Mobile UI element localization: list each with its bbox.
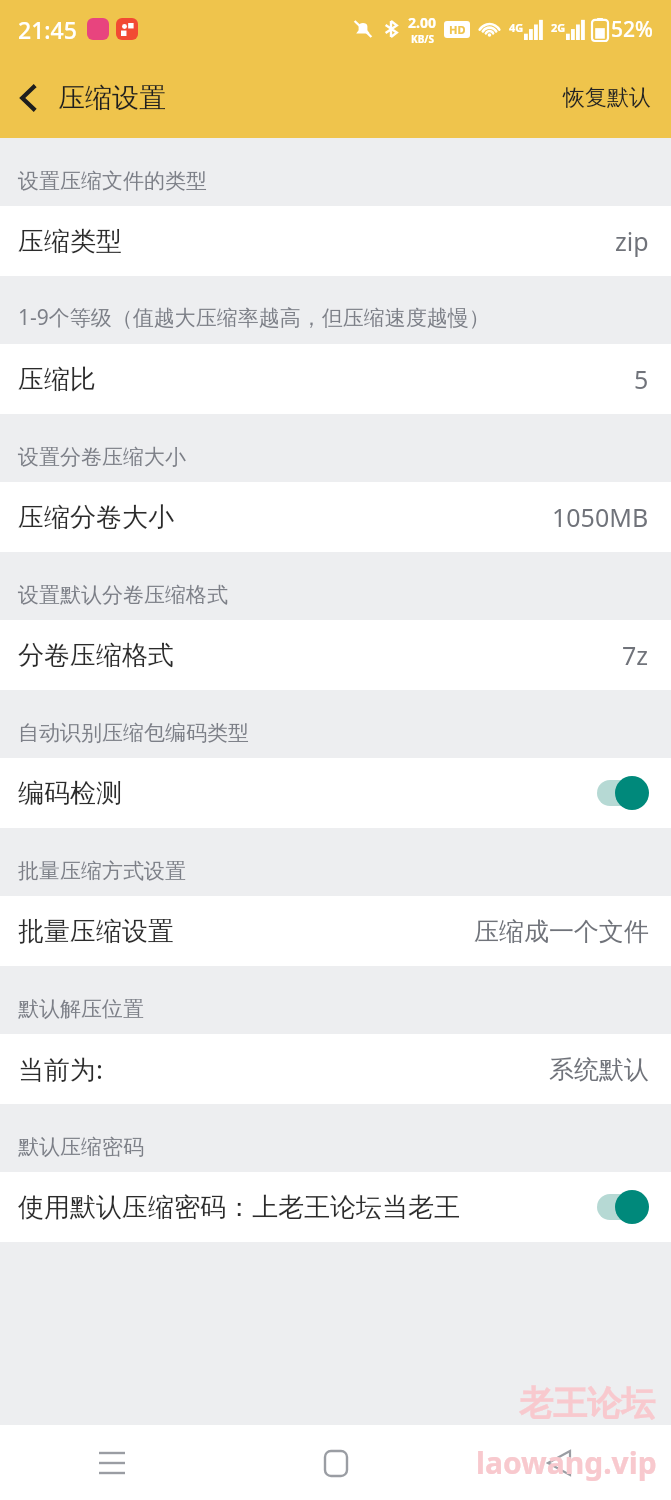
staticText: 设置默认分卷压缩格式: [18, 582, 228, 608]
staticText: 系统默认: [549, 1054, 649, 1085]
staticText: 设置分卷压缩大小: [18, 444, 186, 470]
button[interactable]: 压缩比: [0, 344, 671, 414]
staticText: 1050MB: [552, 500, 649, 534]
staticText: HD: [449, 22, 466, 37]
staticText: 2G: [551, 20, 566, 35]
button[interactable]: 分卷压缩格式: [0, 620, 671, 690]
staticText: 4G: [509, 20, 524, 35]
staticText: 老王论坛: [519, 1382, 655, 1425]
staticText: 2.00: [408, 13, 436, 32]
staticText: zip: [615, 224, 649, 258]
staticText: 批量压缩设置: [18, 915, 174, 948]
button[interactable]: Back: [0, 69, 58, 127]
button[interactable]: 当前为:: [0, 1034, 671, 1104]
button[interactable]: 使用默认压缩密码：上老王论坛当老王: [0, 1172, 671, 1242]
staticText: 当前为:: [18, 1051, 103, 1087]
button[interactable]: 编码检测: [0, 758, 671, 828]
staticText: 自动识别压缩包编码类型: [18, 720, 249, 746]
staticText: 5: [634, 362, 649, 396]
staticText: 恢复默认: [563, 84, 651, 112]
staticText: 默认解压位置: [18, 996, 144, 1022]
button[interactable]: 压缩类型: [0, 206, 671, 276]
staticText: KB/S: [411, 32, 434, 46]
staticText: laowang.vip: [476, 1442, 657, 1483]
button[interactable]: Back: [524, 1428, 594, 1498]
staticText: 21:45: [18, 14, 77, 45]
staticText: 分卷压缩格式: [18, 639, 174, 672]
staticText: 压缩分卷大小: [18, 501, 174, 534]
button[interactable]: Home: [301, 1428, 371, 1498]
button[interactable]: 恢复默认: [543, 74, 671, 122]
staticText: 压缩类型: [18, 225, 122, 258]
button[interactable]: 批量压缩设置: [0, 896, 671, 966]
staticText: 压缩比: [18, 363, 96, 396]
staticText: 压缩设置: [58, 81, 166, 115]
staticText: 批量压缩方式设置: [18, 858, 186, 884]
staticText: 压缩成一个文件: [474, 916, 649, 947]
button[interactable]: Recent apps: [77, 1428, 147, 1498]
staticText: 1-9个等级（值越大压缩率越高，但压缩速度越慢）: [18, 303, 490, 332]
staticText: 编码检测: [18, 777, 122, 810]
staticText: 设置压缩文件的类型: [18, 168, 207, 194]
button[interactable]: 压缩分卷大小: [0, 482, 671, 552]
staticText: 7z: [622, 638, 649, 672]
staticText: 默认压缩密码: [18, 1134, 144, 1160]
staticText: 使用默认压缩密码：上老王论坛当老王: [18, 1191, 460, 1224]
staticText: 52%: [611, 15, 653, 44]
